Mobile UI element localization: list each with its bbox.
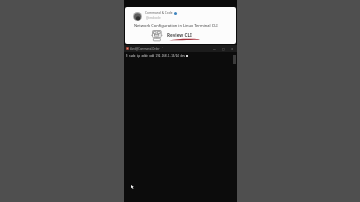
staticText: Network Configuration in Linux Terminal … xyxy=(134,23,218,28)
staticText: ✕ xyxy=(231,47,234,50)
staticText: kbrd@Command-Order xyxy=(130,47,160,51)
button[interactable]: Review CLI xyxy=(149,28,197,43)
staticText: @cmdcode xyxy=(146,16,161,20)
staticText: Review CLI xyxy=(167,32,192,38)
button[interactable]: Maximize xyxy=(219,45,228,52)
staticText: $ sudo ip addr add 192.168.1.13/24 dev xyxy=(126,54,186,58)
staticText: Command & Code xyxy=(145,11,173,15)
button[interactable]: Close xyxy=(228,45,237,52)
staticText: ˇ xyxy=(162,47,164,51)
staticText: □ xyxy=(222,47,225,50)
button[interactable]: Command & Code xyxy=(125,7,236,44)
button[interactable]: kbrd@Command-Order xyxy=(130,47,164,51)
staticText: — xyxy=(213,47,216,51)
button[interactable]: Minimize xyxy=(210,45,219,52)
